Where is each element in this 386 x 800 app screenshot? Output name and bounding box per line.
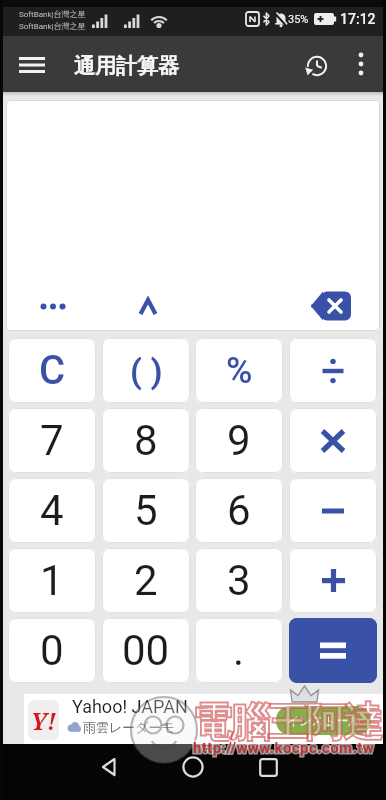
staticText: インストール — [287, 713, 361, 728]
staticText: 電腦王阿達 — [193, 697, 382, 747]
button[interactable] — [289, 618, 377, 683]
staticText: 6 — [227, 486, 251, 535]
staticText: 雨雲レーダーモ — [83, 719, 175, 735]
staticText: SoftBank|台灣之星 — [19, 9, 86, 19]
staticText: 17:12 — [340, 11, 376, 27]
staticText: http://www.kocpc.com.tw — [193, 739, 375, 757]
button[interactable]: 5 — [102, 478, 190, 543]
staticText: % — [226, 350, 253, 392]
staticText: ( ) — [130, 351, 163, 391]
button[interactable] — [289, 478, 377, 543]
button[interactable] — [344, 50, 378, 78]
button[interactable]: % — [195, 338, 283, 403]
button[interactable] — [132, 290, 164, 322]
staticText: . — [233, 626, 245, 675]
staticText: 0 — [40, 626, 64, 675]
button[interactable] — [289, 408, 377, 473]
button[interactable] — [296, 52, 336, 80]
staticText: 35% — [288, 13, 309, 26]
button[interactable]: 8 — [102, 408, 190, 473]
button[interactable] — [173, 745, 213, 789]
button[interactable] — [306, 287, 356, 325]
staticText: 1 — [40, 556, 64, 605]
staticText: http://www.kocpc.com.tw — [193, 739, 375, 757]
button[interactable]: 00 — [102, 618, 190, 683]
button[interactable] — [28, 290, 78, 322]
button[interactable]: 1 — [8, 548, 96, 613]
staticText: 電腦王阿達 — [193, 697, 382, 747]
button[interactable]: 2 — [102, 548, 190, 613]
button[interactable] — [248, 745, 288, 789]
button[interactable]: ( ) — [102, 338, 190, 403]
staticText: 00 — [122, 626, 170, 675]
button[interactable]: インストール — [276, 706, 371, 735]
staticText: Yahoo! JAPAN — [72, 696, 188, 717]
staticText: 8 — [134, 416, 158, 465]
button[interactable]: 3 — [195, 548, 283, 613]
button[interactable]: 4 — [8, 478, 96, 543]
staticText: 7 — [40, 416, 64, 465]
staticText: 9 — [227, 416, 251, 465]
button[interactable] — [8, 51, 56, 79]
staticText: 5 — [134, 486, 158, 535]
staticText: 3 — [227, 556, 251, 605]
button[interactable]: 6 — [195, 478, 283, 543]
button[interactable]: 0 — [8, 618, 96, 683]
staticText: C — [39, 347, 66, 394]
staticText: SoftBank|台灣之星 — [19, 21, 86, 31]
staticText: Y! — [31, 705, 57, 736]
button[interactable]: 7 — [8, 408, 96, 473]
button[interactable]: 9 — [195, 408, 283, 473]
button[interactable] — [289, 338, 377, 403]
button[interactable] — [88, 745, 128, 789]
staticText: 2 — [134, 556, 158, 605]
button[interactable]: C — [8, 338, 96, 403]
button[interactable] — [24, 694, 383, 744]
button[interactable]: . — [195, 618, 283, 683]
staticText: 通用計算器 — [74, 53, 179, 79]
button[interactable] — [289, 548, 377, 613]
staticText: 4 — [40, 486, 64, 535]
